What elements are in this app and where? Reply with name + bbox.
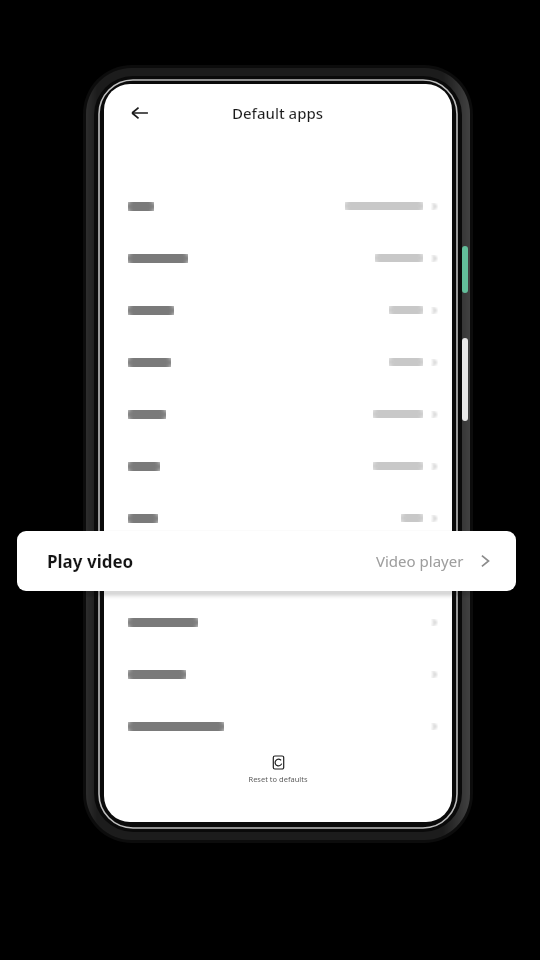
button[interactable]	[104, 232, 452, 284]
button[interactable]: Play video	[17, 531, 516, 591]
staticText: Reset to defaults	[248, 774, 308, 784]
button[interactable]	[104, 336, 452, 388]
button[interactable]	[104, 180, 452, 232]
button[interactable]	[104, 388, 452, 440]
staticText: Video player	[376, 551, 464, 571]
button[interactable]	[104, 440, 452, 492]
button[interactable]	[104, 648, 452, 700]
staticText: Default apps	[232, 103, 324, 123]
staticText: Play video	[47, 550, 134, 573]
button[interactable]	[104, 596, 452, 648]
button[interactable]	[104, 492, 452, 544]
button[interactable]: Reset to defaults	[223, 756, 333, 784]
button[interactable]: Back	[124, 97, 156, 129]
button[interactable]	[104, 700, 452, 752]
button[interactable]	[104, 284, 452, 336]
button[interactable]	[104, 544, 452, 596]
